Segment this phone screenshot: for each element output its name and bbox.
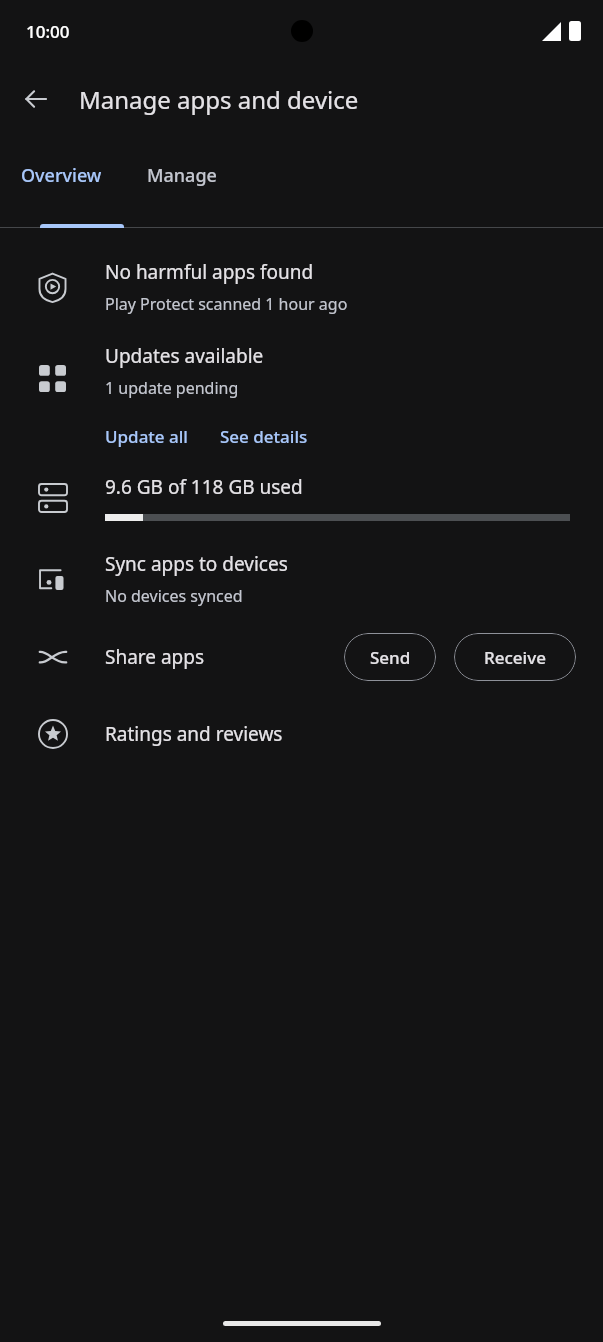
button[interactable]: See details: [220, 421, 308, 452]
staticText: Manage: [147, 163, 217, 188]
staticText: No harmful apps found: [105, 259, 314, 285]
staticText: Updates available: [105, 343, 264, 369]
button[interactable]: Update all: [105, 421, 188, 452]
button[interactable]: Overview: [0, 136, 123, 228]
staticText: Send: [370, 646, 411, 669]
staticText: See details: [220, 425, 308, 448]
staticText: Update all: [105, 425, 188, 448]
button[interactable]: Updates available: [105, 343, 603, 399]
button[interactable]: 9.6 GB of 118 GB used: [0, 474, 603, 521]
button[interactable]: Back: [12, 75, 60, 123]
staticText: Ratings and reviews: [105, 721, 283, 747]
button[interactable]: Ratings and reviews: [0, 711, 603, 757]
staticText: Play Protect scanned 1 hour ago: [105, 293, 348, 315]
staticText: No devices synced: [105, 585, 243, 607]
staticText: Manage apps and device: [79, 83, 359, 116]
button[interactable]: No harmful apps found: [0, 255, 603, 319]
staticText: 1 update pending: [105, 377, 239, 399]
staticText: 9.6 GB of 118 GB used: [105, 474, 303, 500]
staticText: Receive: [484, 646, 546, 669]
button[interactable]: Manage: [123, 136, 241, 228]
button[interactable]: Send: [344, 633, 436, 681]
staticText: Sync apps to devices: [105, 551, 288, 577]
staticText: 10:00: [26, 20, 70, 43]
staticText: Overview: [21, 163, 102, 188]
staticText: Share apps: [105, 644, 344, 670]
button[interactable]: Sync apps to devices: [0, 547, 603, 611]
button[interactable]: Receive: [454, 633, 576, 681]
